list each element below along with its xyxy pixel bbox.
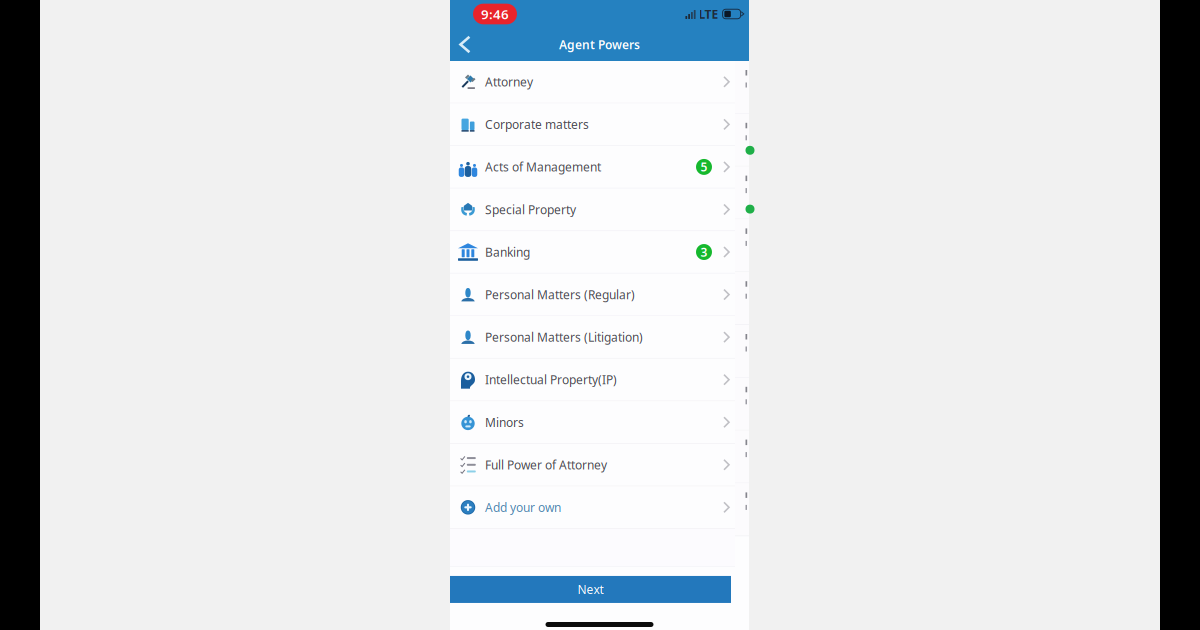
staticText: Personal Matters (Regular)	[485, 287, 635, 302]
staticText: Intellectual Property(IP)	[485, 372, 617, 388]
button[interactable]: Back	[450, 28, 487, 60]
staticText: Add your own	[485, 499, 561, 515]
staticText: Next	[577, 581, 603, 597]
button[interactable]: Personal Matters (Regular)	[450, 274, 749, 316]
staticText: LTE	[699, 6, 719, 22]
staticText: Attorney	[485, 74, 533, 90]
staticText: 9:46	[481, 5, 509, 23]
button[interactable]: Next	[450, 576, 731, 603]
staticText: 3	[700, 244, 707, 260]
button[interactable]: Intellectual Property(IP)	[450, 359, 749, 401]
staticText: Minors	[485, 414, 524, 430]
button[interactable]: Attorney	[450, 61, 749, 103]
button[interactable]: Add your own	[450, 486, 749, 529]
button[interactable]: Minors	[450, 401, 749, 444]
button[interactable]: Special Property	[450, 189, 749, 231]
button[interactable]: Personal Matters (Litigation)	[450, 316, 749, 359]
staticText: Corporate matters	[485, 116, 589, 132]
button[interactable]: Corporate matters	[450, 103, 749, 146]
button[interactable]: Acts of Management	[450, 146, 749, 189]
staticText: 5	[700, 159, 707, 175]
staticText: Personal Matters (Litigation)	[485, 329, 643, 345]
button[interactable]: Full Power of Attorney	[450, 444, 749, 486]
staticText: Full Power of Attorney	[485, 457, 607, 473]
staticText: Banking	[485, 244, 530, 260]
button[interactable]: Banking	[450, 231, 749, 274]
staticText: Special Property	[485, 201, 576, 217]
staticText: Acts of Management	[485, 159, 601, 175]
staticText: Agent Powers	[559, 36, 640, 52]
